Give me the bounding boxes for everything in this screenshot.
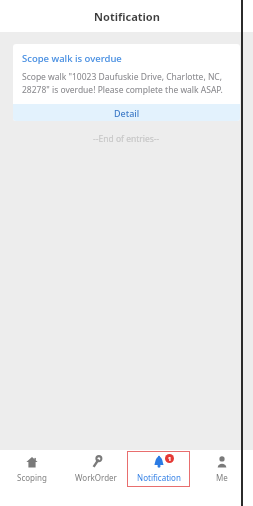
staticText: Scope walk is overdue bbox=[22, 52, 122, 65]
staticText: WorkOrder bbox=[75, 472, 117, 483]
button[interactable]: Notification bbox=[127, 451, 190, 487]
staticText: --End of entries-- bbox=[93, 133, 160, 145]
staticText: Me bbox=[216, 472, 228, 483]
button[interactable]: Me bbox=[190, 451, 253, 487]
staticText: Scoping bbox=[17, 472, 47, 483]
staticText: Notification bbox=[94, 9, 160, 24]
staticText: Scope walk "10023 Daufuskie Drive, Charl… bbox=[22, 71, 231, 96]
button[interactable]: WorkOrder bbox=[64, 451, 127, 487]
button[interactable]: Scoping bbox=[0, 451, 64, 487]
staticText: 1 bbox=[168, 455, 172, 462]
staticText: Detail bbox=[114, 107, 140, 119]
staticText: Notification bbox=[137, 472, 181, 483]
button[interactable]: Detail bbox=[13, 104, 240, 121]
